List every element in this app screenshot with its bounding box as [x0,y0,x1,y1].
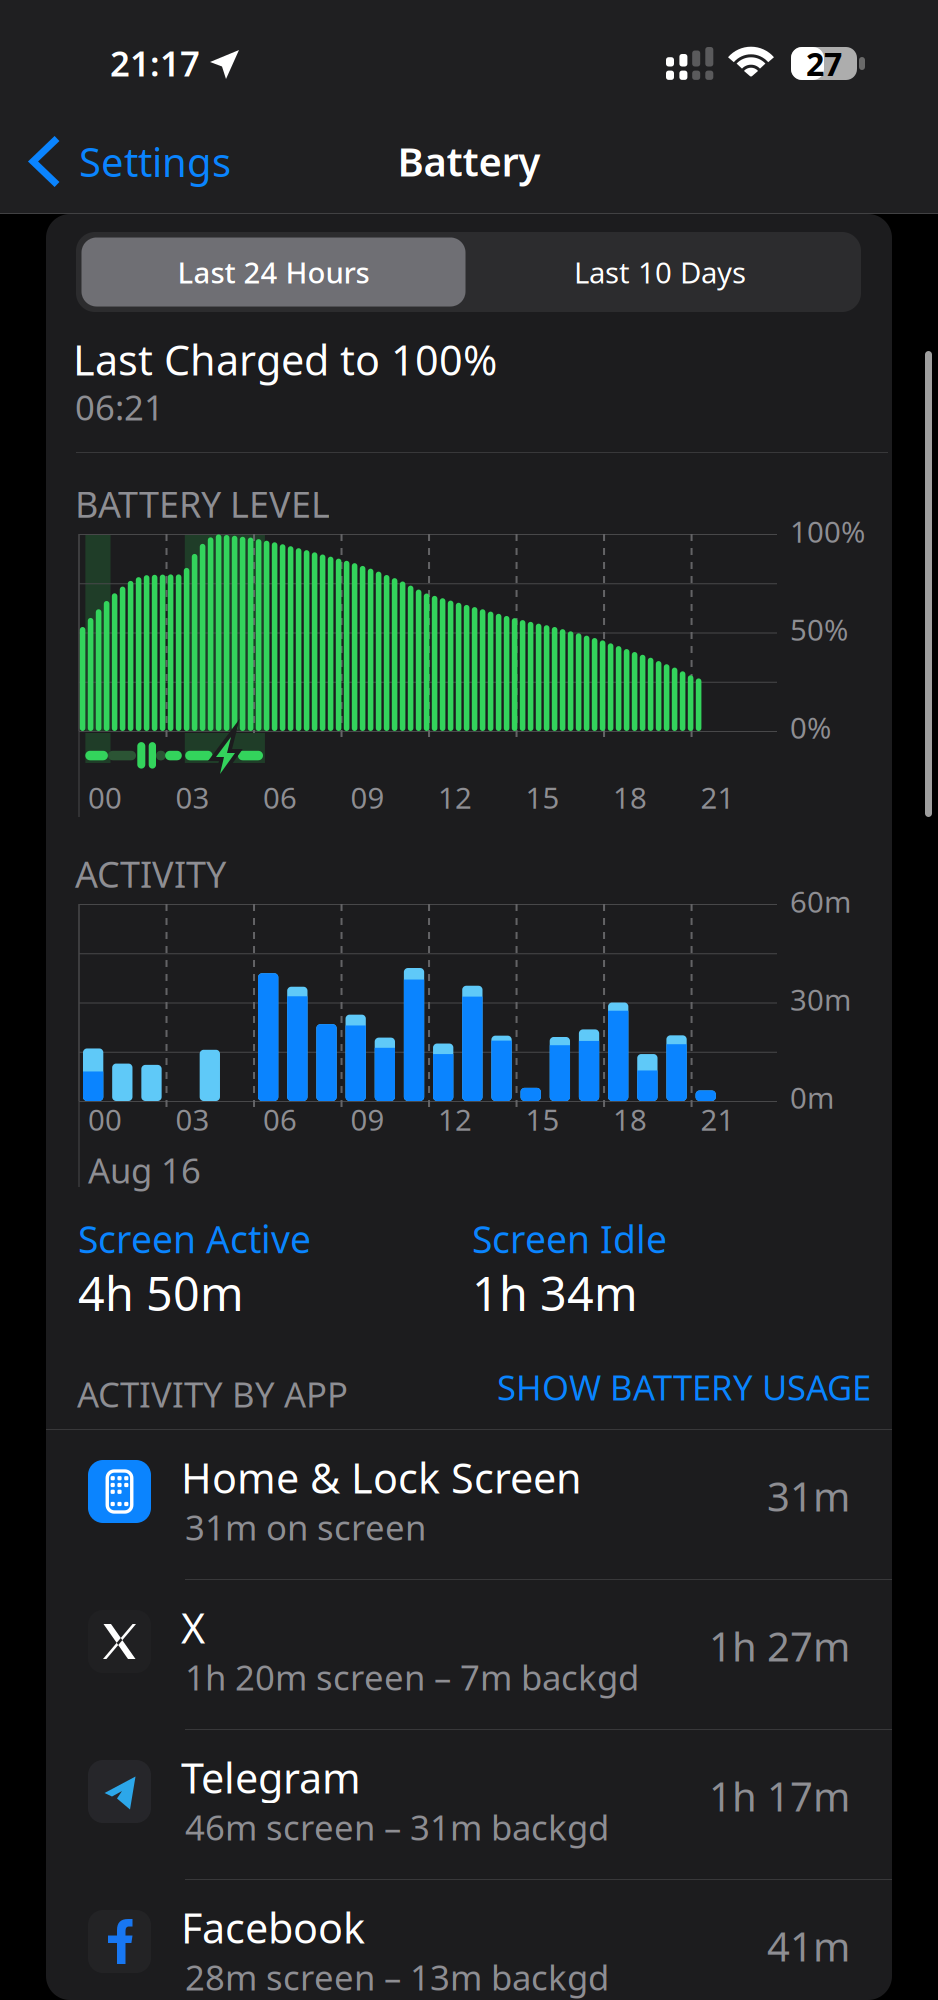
staticText: Last 24 Hours [177,252,369,291]
button[interactable]: Telegram [46,1730,892,1879]
staticText: 30m [790,980,851,1019]
staticText: 18 [613,778,647,817]
staticText: 1h 27m [709,1619,850,1672]
staticText: Battery [397,134,540,187]
staticText: 31m on screen [185,1504,426,1550]
staticText: 15 [526,1100,560,1139]
staticText: Telegram [181,1750,361,1805]
staticText: ACTIVITY [75,850,226,898]
button[interactable]: SHOW BATTERY USAGE [460,1371,871,1403]
staticText: BATTERY LEVEL [75,480,330,528]
staticText: Last 10 Days [574,252,746,291]
staticText: 03 [175,778,209,817]
staticText: SHOW BATTERY USAGE [497,1364,871,1410]
staticText: 12 [438,778,472,817]
staticText: ACTIVITY BY APP [77,1371,348,1417]
staticText: 06 [263,1100,297,1139]
staticText: 12 [438,1100,472,1139]
staticText: 0% [790,708,831,747]
staticText: 1h 17m [709,1769,850,1822]
button[interactable]: Home & Lock Screen [46,1430,892,1579]
staticText: Facebook [181,1900,365,1955]
button[interactable]: Facebook [46,1880,892,2000]
staticText: 21:17 [110,40,200,86]
staticText: 1h 20m screen – 7m backgd [185,1654,639,1700]
staticText: 15 [526,778,560,817]
staticText: 27 [806,42,842,85]
staticText: 1h 34m [472,1262,638,1324]
staticText: 41m [767,1919,850,1972]
staticText: 21 [701,778,735,817]
staticText: 50% [790,610,848,649]
staticText: Home & Lock Screen [181,1450,582,1505]
staticText: 06:21 [75,384,164,430]
staticText: 18 [613,1100,647,1139]
staticText: 03 [175,1100,209,1139]
staticText: 00 [88,1100,122,1139]
staticText: Screen Idle [472,1214,667,1264]
staticText: 21 [701,1100,735,1139]
button[interactable]: Settings [0,120,300,214]
staticText: X [181,1600,205,1655]
staticText: 06 [263,778,297,817]
staticText: Screen Active [78,1214,311,1264]
staticText: 28m screen – 13m backgd [185,1954,609,2000]
staticText: 46m screen – 31m backgd [185,1804,609,1850]
staticText: 100% [790,512,865,551]
staticText: 09 [350,1100,384,1139]
staticText: 31m [767,1469,850,1522]
staticText: Aug 16 [88,1147,201,1193]
staticText: 4h 50m [78,1262,244,1324]
staticText: Settings [79,135,231,188]
button[interactable]: Last 24 Hours [81,237,465,306]
staticText: 00 [88,778,122,817]
staticText: 09 [350,778,384,817]
button[interactable]: X [46,1580,892,1729]
button[interactable]: Last 10 Days [468,237,852,306]
staticText: Last Charged to 100% [73,332,497,387]
staticText: 60m [790,882,851,921]
staticText: 0m [790,1078,834,1117]
